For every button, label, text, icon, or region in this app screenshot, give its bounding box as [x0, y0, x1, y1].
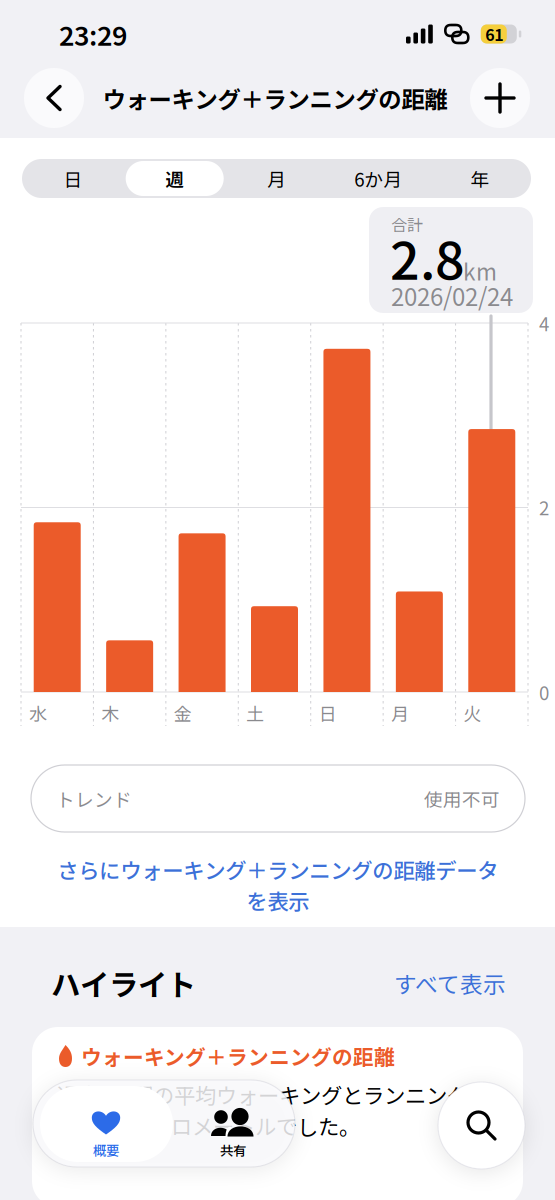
- staticText: 使用不可: [424, 785, 500, 812]
- staticText: 4: [539, 309, 549, 336]
- staticText: 金: [174, 700, 192, 726]
- button[interactable]: 6か月: [327, 159, 429, 198]
- staticText: 月: [267, 165, 286, 192]
- staticText: 日: [63, 165, 82, 192]
- button[interactable]: 週: [124, 159, 226, 198]
- button[interactable]: 年: [429, 159, 531, 198]
- staticText: 月: [391, 700, 409, 726]
- button[interactable]: 追加: [470, 68, 530, 128]
- staticText: 過去7日間の平均ウォーキングとランニングの距離は1.9キロメートルでした。: [57, 1079, 489, 1141]
- staticText: 2.8: [390, 219, 465, 295]
- staticText: 合計: [391, 212, 423, 236]
- staticText: トレンド: [56, 785, 132, 812]
- staticText: ハイライト: [51, 962, 196, 1004]
- staticText: 年: [471, 165, 490, 192]
- staticText: 23:29: [59, 15, 127, 53]
- button[interactable]: すべて表示: [394, 967, 506, 999]
- staticText: km: [463, 254, 497, 287]
- button[interactable]: 月: [226, 159, 327, 198]
- staticText: 61: [485, 22, 503, 46]
- staticText: すべて表示: [394, 967, 506, 999]
- staticText: 0: [539, 678, 549, 705]
- button[interactable]: さらにウォーキング＋ランニングの距離データを表示: [50, 848, 505, 922]
- button[interactable]: 日: [22, 159, 124, 198]
- button[interactable]: 検索: [438, 1082, 525, 1169]
- staticText: ウォーキング＋ランニングの距離: [81, 1041, 395, 1071]
- staticText: 共有: [220, 1140, 246, 1160]
- staticText: 土: [246, 700, 264, 726]
- staticText: 木: [101, 700, 119, 726]
- staticText: 日: [319, 700, 337, 726]
- staticText: 週: [165, 165, 184, 192]
- staticText: 2026/02/24: [391, 278, 513, 313]
- button[interactable]: 共有: [178, 1086, 288, 1162]
- staticText: さらにウォーキング＋ランニングの距離データを表示: [57, 854, 498, 916]
- staticText: 水: [29, 700, 47, 726]
- button[interactable]: 概要: [40, 1086, 173, 1162]
- button[interactable]: 戻る: [24, 68, 84, 128]
- staticText: ウォーキング＋ランニングの距離: [102, 81, 447, 115]
- staticText: 概要: [93, 1140, 119, 1160]
- staticText: 火: [464, 700, 482, 726]
- staticText: 2: [539, 493, 549, 520]
- staticText: 6か月: [354, 165, 402, 192]
